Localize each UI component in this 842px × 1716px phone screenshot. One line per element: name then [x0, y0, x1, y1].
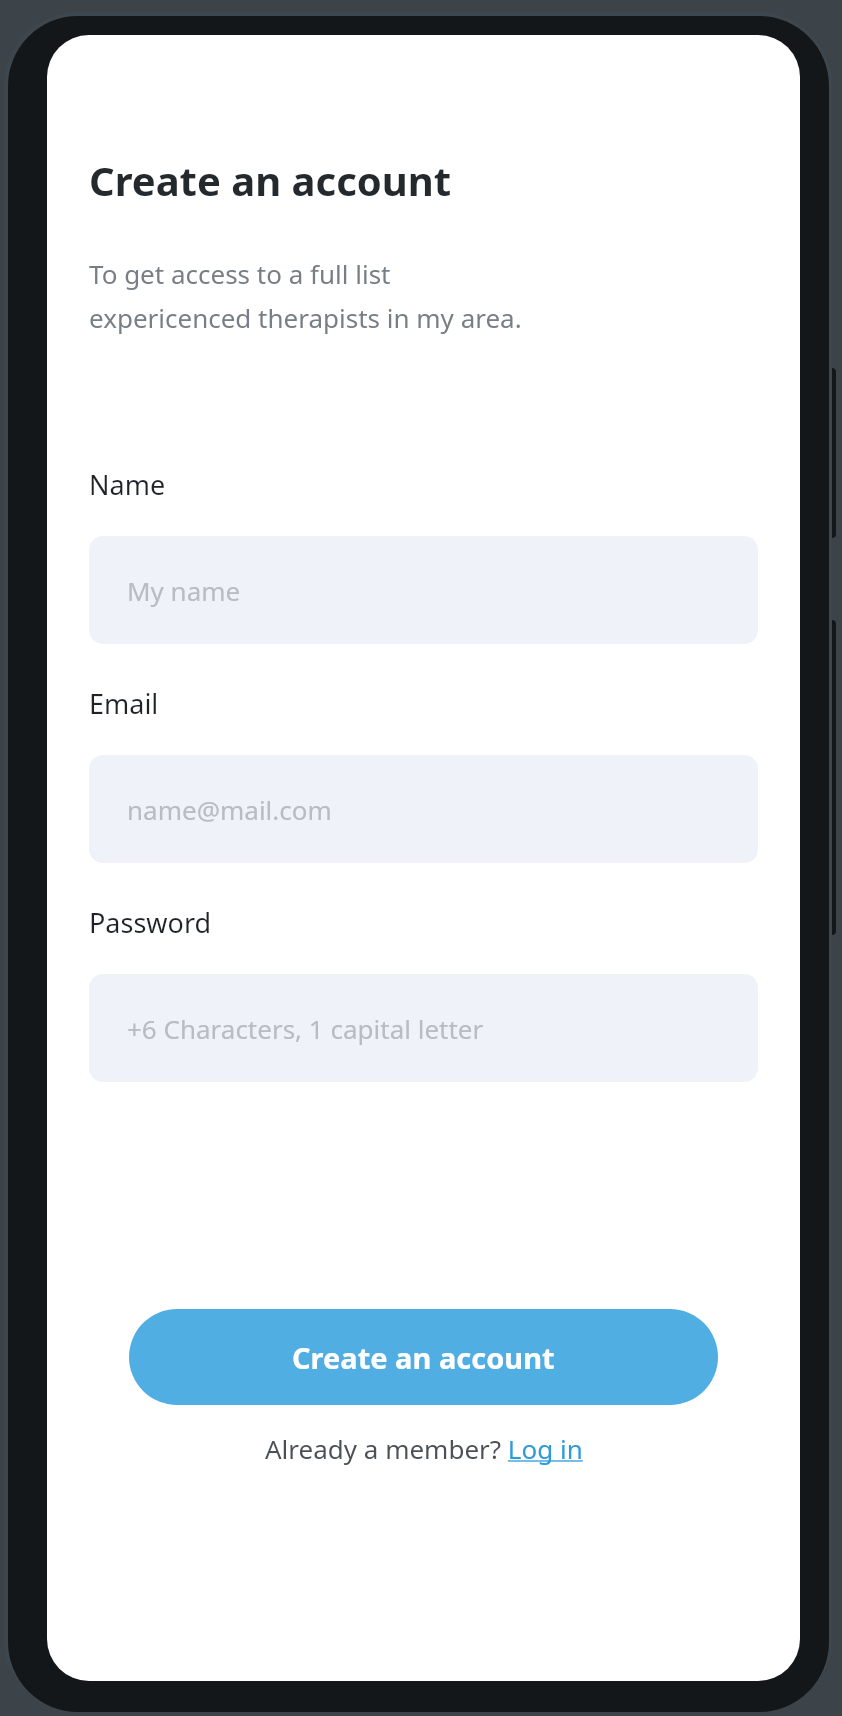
staticText: Name	[89, 466, 166, 503]
staticText: name@mail.com	[127, 792, 332, 827]
button[interactable]: name@mail.com	[89, 755, 758, 863]
staticText: +6 Characters, 1 capital letter	[127, 1011, 484, 1046]
staticText: Create an account	[89, 153, 452, 207]
button[interactable]: My name	[89, 536, 758, 644]
staticText: Create an account	[292, 1338, 555, 1377]
button[interactable]: Create an account	[129, 1309, 718, 1405]
button[interactable]: +6 Characters, 1 capital letter	[89, 974, 758, 1082]
staticText: My name	[127, 573, 241, 608]
button[interactable]: Already a member? Log in	[265, 1431, 583, 1466]
staticText: To get access to a full list expericence…	[89, 256, 522, 336]
staticText: Already a member? Log in	[265, 1431, 583, 1466]
staticText: Email	[89, 685, 159, 722]
staticText: Password	[89, 904, 212, 941]
